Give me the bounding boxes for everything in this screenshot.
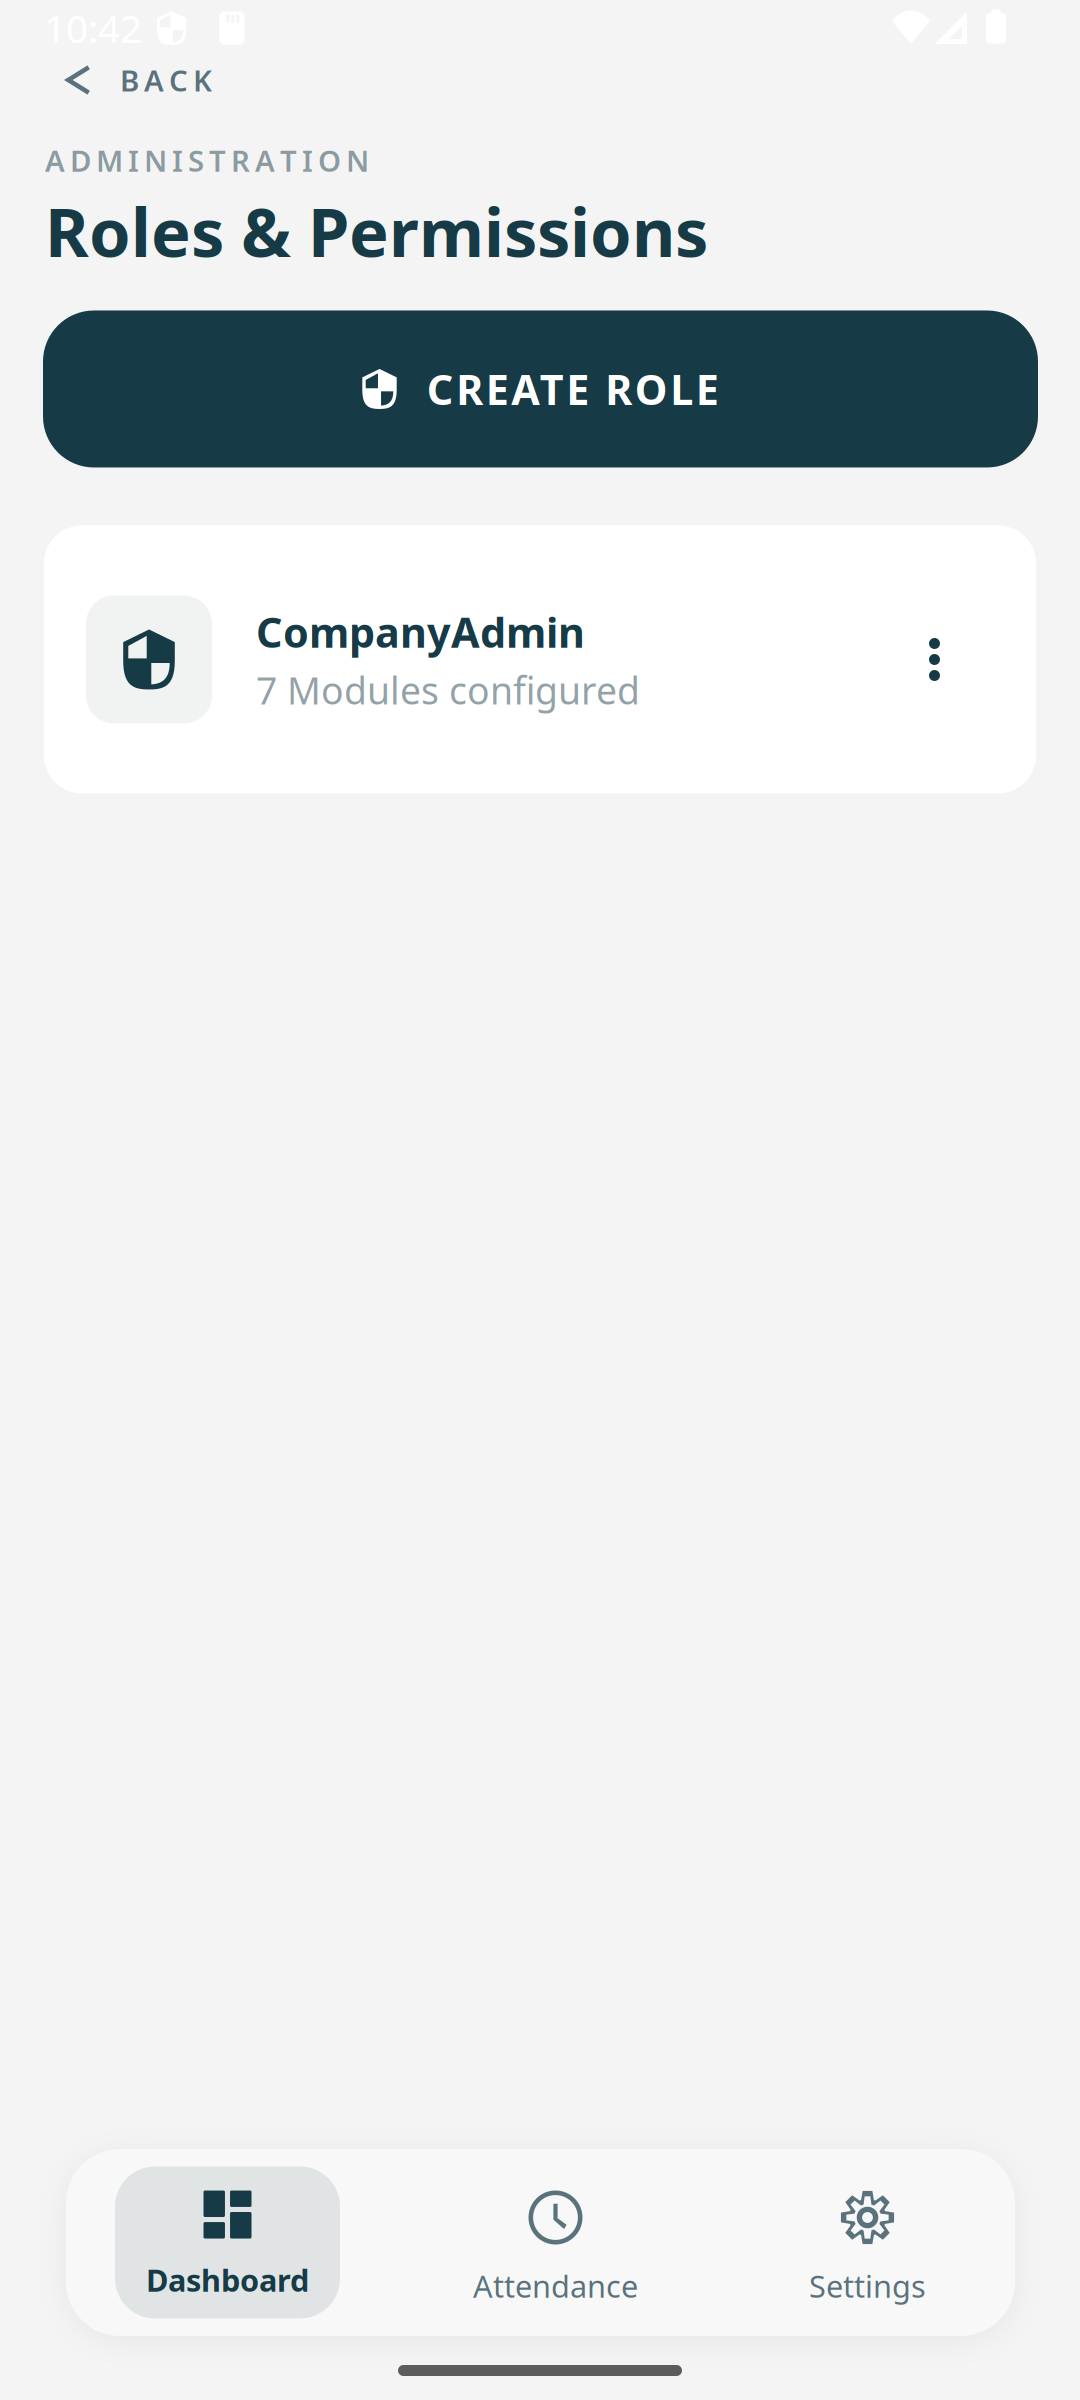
staticText: A D M I N I S T R A T I O N [45,141,369,180]
staticText: Dashboard [146,2259,309,2300]
button[interactable]: CREATE ROLE [43,310,1038,467]
staticText: 10:42 [44,2,142,54]
button[interactable]: Dashboard [115,2166,340,2318]
staticText: CREATE ROLE [427,361,719,416]
staticText: CompanyAdmin [256,604,585,659]
staticText: 7 Modules configured [256,665,640,715]
button[interactable]: B A C K [0,56,224,104]
staticText: Roles & Permissions [45,187,708,275]
staticText: B A C K [120,60,212,99]
button[interactable]: CompanyAdmin [44,525,1036,793]
button[interactable]: Settings [755,2166,980,2318]
staticText: Attendance [473,2265,638,2306]
staticText: Settings [809,2265,926,2306]
button[interactable]: Attendance [443,2166,668,2318]
